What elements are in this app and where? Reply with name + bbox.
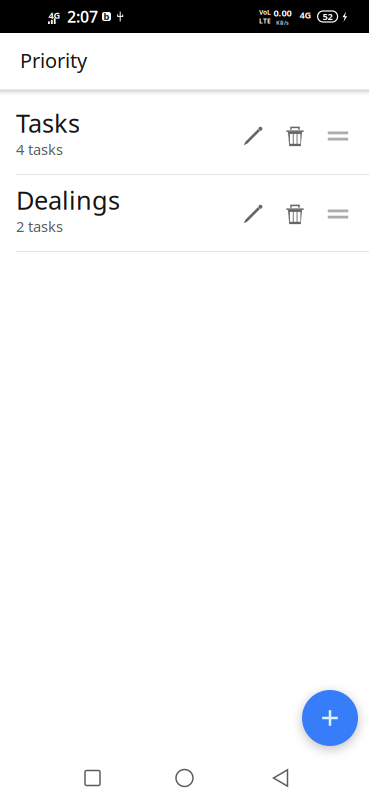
button[interactable]: Edit Tasks xyxy=(237,116,269,156)
staticText: KB/s xyxy=(276,19,289,26)
staticText: b xyxy=(103,10,109,23)
button[interactable]: Recents xyxy=(65,756,120,800)
staticText: 4 tasks xyxy=(16,140,63,159)
staticText: 2:07 xyxy=(67,6,98,27)
staticText: 4G xyxy=(300,9,312,21)
staticText: 4G xyxy=(48,9,60,21)
staticText: 52 xyxy=(323,10,333,23)
staticText: Tasks xyxy=(16,106,80,140)
button[interactable]: Edit Dealings xyxy=(237,194,269,234)
button[interactable]: Add xyxy=(302,690,358,746)
staticText: LTE xyxy=(259,16,271,25)
staticText: Priority xyxy=(20,47,87,74)
staticText: 2 tasks xyxy=(16,217,63,236)
staticText: VoL xyxy=(259,8,271,16)
button[interactable]: Home xyxy=(157,756,212,800)
button[interactable]: Reorder Tasks xyxy=(322,116,354,156)
button[interactable]: Delete Tasks xyxy=(279,116,311,156)
button[interactable]: Back xyxy=(249,756,304,800)
staticText: Dealings xyxy=(16,183,120,217)
button[interactable]: Reorder Dealings xyxy=(322,194,354,234)
button[interactable]: Delete Dealings xyxy=(279,194,311,234)
staticText: 0.00 xyxy=(274,7,292,19)
